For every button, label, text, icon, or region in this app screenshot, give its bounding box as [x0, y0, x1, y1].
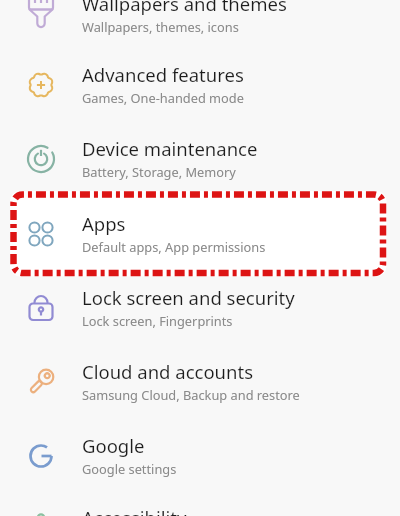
button[interactable]: Apps	[0, 196, 400, 271]
button[interactable]: Advanced features	[0, 47, 400, 122]
button[interactable]: Accessibility	[0, 490, 400, 516]
staticText: Games, One-handed mode	[82, 89, 244, 106]
staticText: Battery, Storage, Memory	[82, 163, 236, 180]
button[interactable]: Wallpapers and themes	[0, 0, 400, 48]
staticText: Samsung Cloud, Backup and restore	[82, 386, 300, 403]
staticText: Google settings	[82, 460, 177, 477]
button[interactable]: Google	[0, 418, 400, 493]
staticText: Wallpapers, themes, icons	[82, 18, 239, 35]
button[interactable]: Lock screen and security	[0, 270, 400, 345]
staticText: Accessibility	[82, 505, 187, 516]
button[interactable]: Cloud and accounts	[0, 344, 400, 419]
staticText: Lock screen and security	[82, 285, 295, 310]
staticText: Google	[82, 433, 145, 458]
staticText: Cloud and accounts	[82, 359, 254, 384]
staticText: Wallpapers and themes	[82, 0, 287, 16]
staticText: Apps	[82, 211, 126, 236]
button[interactable]: Device maintenance	[0, 121, 400, 196]
staticText: Default apps, App permissions	[82, 238, 266, 255]
staticText: Advanced features	[82, 62, 244, 87]
staticText: Lock screen, Fingerprints	[82, 312, 233, 329]
staticText: Device maintenance	[82, 136, 258, 161]
